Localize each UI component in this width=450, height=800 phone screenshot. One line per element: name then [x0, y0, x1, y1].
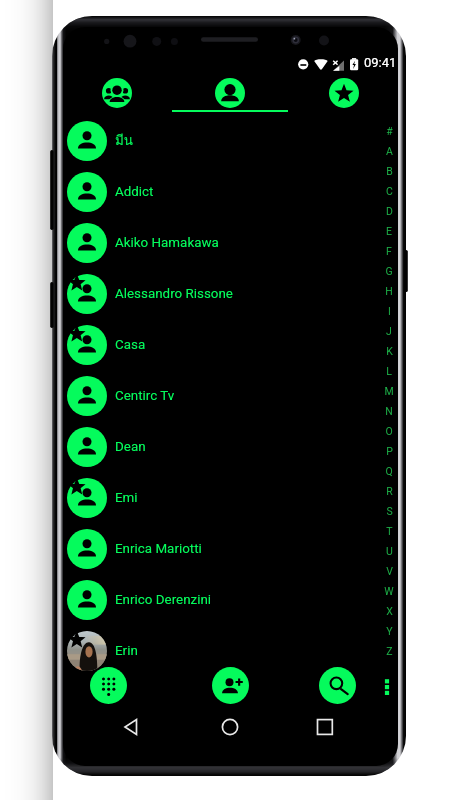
- staticText: V: [386, 565, 393, 577]
- staticText: L: [386, 365, 392, 377]
- staticText: C: [386, 185, 393, 197]
- staticText: W: [384, 585, 394, 597]
- button[interactable]: Dean: [63, 421, 398, 472]
- button[interactable]: มีน: [63, 115, 398, 166]
- staticText: T: [386, 525, 393, 537]
- staticText: J: [386, 325, 392, 337]
- staticText: P: [386, 445, 393, 457]
- staticText: Centirc Tv: [115, 388, 175, 404]
- staticText: Y: [386, 625, 393, 637]
- staticText: #: [386, 125, 393, 137]
- button[interactable]: Contacts: [215, 78, 245, 108]
- button[interactable]: Favorites: [329, 78, 359, 108]
- staticText: มีน: [115, 130, 133, 151]
- staticText: Q: [385, 465, 393, 477]
- staticText: Casa: [115, 337, 146, 353]
- staticText: H: [385, 285, 393, 297]
- button[interactable]: Erin: [63, 625, 398, 676]
- staticText: A: [386, 145, 393, 157]
- button[interactable]: Centirc Tv: [63, 370, 398, 421]
- staticText: Dean: [115, 439, 146, 455]
- staticText: Z: [386, 645, 393, 657]
- staticText: O: [385, 425, 393, 437]
- staticText: R: [386, 485, 393, 497]
- button[interactable]: Search: [319, 667, 356, 704]
- button[interactable]: Groups: [102, 78, 132, 108]
- button[interactable]: Alessandro Rissone: [63, 268, 398, 319]
- staticText: B: [386, 165, 393, 177]
- staticText: Enrico Derenzini: [115, 592, 212, 608]
- button[interactable]: Akiko Hamakawa: [63, 217, 398, 268]
- staticText: Enrica Mariotti: [115, 541, 202, 557]
- button[interactable]: Casa: [63, 319, 398, 370]
- staticText: Alessandro Rissone: [115, 286, 233, 302]
- staticText: Erin: [115, 643, 138, 659]
- staticText: D: [386, 205, 393, 217]
- button[interactable]: Add contact: [212, 667, 249, 704]
- staticText: Akiko Hamakawa: [115, 235, 219, 251]
- button[interactable]: Dialpad: [90, 667, 127, 704]
- button[interactable]: Emi: [63, 472, 398, 523]
- button[interactable]: Enrica Mariotti: [63, 523, 398, 574]
- staticText: S: [386, 505, 393, 517]
- staticText: E: [386, 225, 392, 237]
- staticText: I: [388, 305, 391, 317]
- button[interactable]: Addict: [63, 166, 398, 217]
- staticText: 09:41: [364, 55, 397, 70]
- staticText: U: [386, 545, 393, 557]
- staticText: F: [386, 245, 392, 257]
- staticText: M: [384, 385, 394, 397]
- button[interactable]: More options: [377, 676, 397, 696]
- staticText: K: [386, 345, 393, 357]
- staticText: Addict: [115, 184, 154, 200]
- staticText: N: [385, 405, 393, 417]
- button[interactable]: Enrico Derenzini: [63, 574, 398, 625]
- staticText: G: [385, 265, 393, 277]
- staticText: X: [386, 605, 393, 617]
- staticText: Emi: [115, 490, 138, 506]
